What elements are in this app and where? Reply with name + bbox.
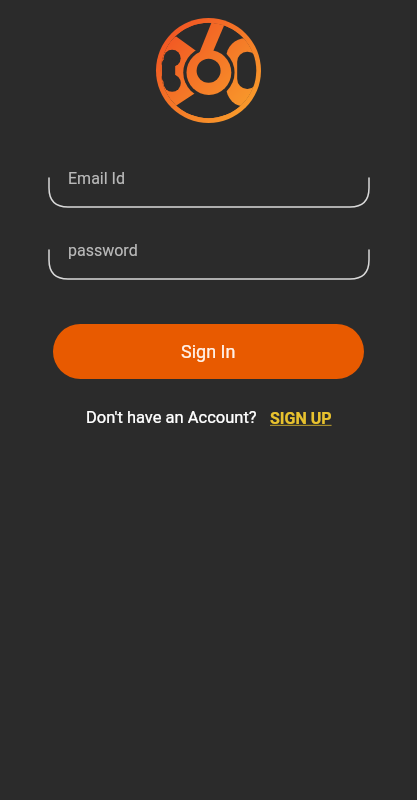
button[interactable]: Sign In (53, 324, 364, 379)
other: 360 logo (156, 18, 261, 123)
staticText: password (68, 241, 138, 260)
button[interactable]: SIGN UP (270, 409, 332, 428)
staticText: SIGN UP (270, 409, 332, 428)
staticText: Don't have an Account? (86, 408, 257, 427)
staticText: Email Id (68, 169, 125, 188)
button[interactable]: Email Id (48, 168, 370, 208)
button[interactable]: password (48, 240, 370, 280)
staticText: Sign In (181, 341, 236, 362)
